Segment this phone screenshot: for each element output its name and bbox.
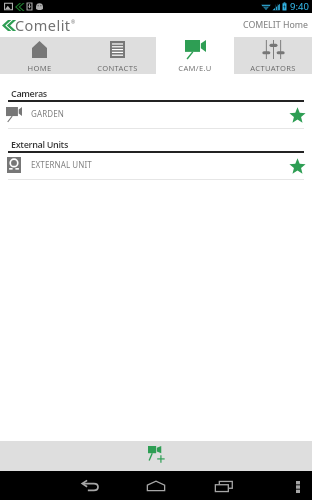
button[interactable]: Recent apps <box>212 474 236 498</box>
button[interactable]: GARDEN <box>0 102 312 129</box>
button[interactable]: Home <box>144 474 168 498</box>
staticText: GARDEN <box>31 108 64 119</box>
staticText: External Units <box>11 138 68 150</box>
staticText: CONTACTS <box>97 63 138 73</box>
button[interactable]: Back <box>78 474 102 498</box>
staticText: HOME <box>27 63 52 73</box>
staticText: CAM/E.U <box>178 63 212 73</box>
staticText: COMELIT Home <box>243 19 308 31</box>
button[interactable]: ACTUATORS <box>234 37 312 74</box>
button[interactable]: Add camera <box>141 442 171 470</box>
staticText: ACTUATORS <box>250 63 296 73</box>
staticText: 9:40 <box>290 0 309 13</box>
button[interactable]: CAM/E.U <box>156 37 234 74</box>
staticText: Cameras <box>11 87 47 99</box>
button[interactable]: HOME <box>0 37 78 74</box>
staticText: EXTERNAL UNIT <box>31 159 92 170</box>
button[interactable]: EXTERNAL UNIT <box>0 153 312 180</box>
button[interactable]: More options <box>288 474 308 498</box>
staticText: ® <box>71 19 76 26</box>
button[interactable]: CONTACTS <box>78 37 156 74</box>
staticText: Comelit <box>15 15 71 35</box>
